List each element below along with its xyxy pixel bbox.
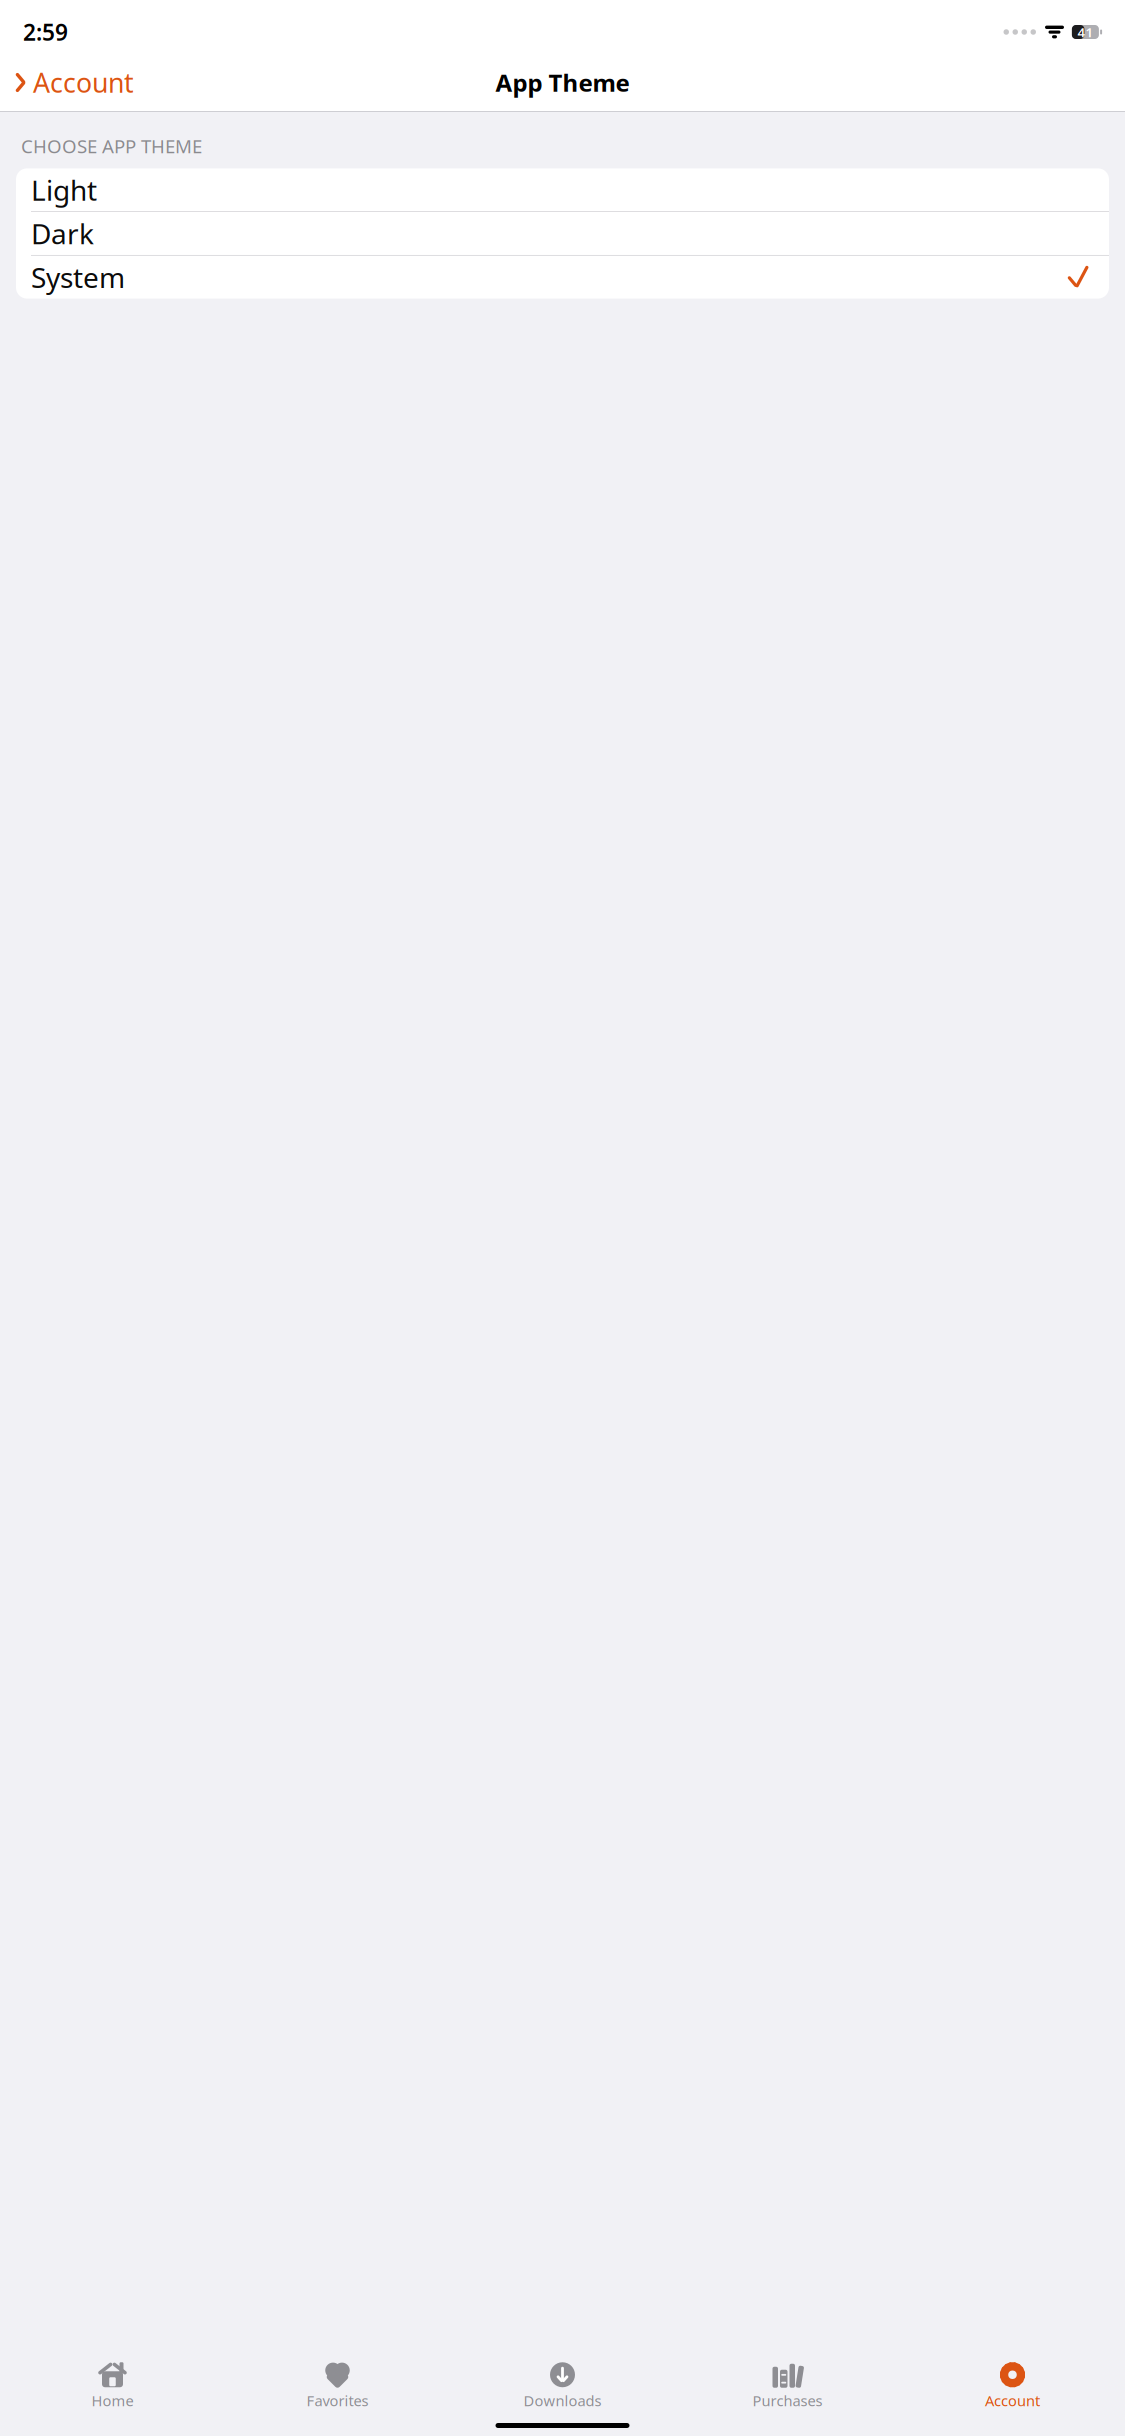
staticText: Home [91, 2391, 133, 2410]
staticText: Account [985, 2391, 1040, 2410]
staticText: Light [31, 171, 97, 208]
button[interactable]: Purchases [675, 2356, 900, 2412]
staticText: 2:59 [23, 17, 68, 47]
button[interactable]: Downloads [450, 2356, 675, 2412]
staticText: 41 [1077, 23, 1093, 41]
button[interactable]: Favorites [225, 2356, 450, 2412]
staticText: Favorites [306, 2391, 368, 2410]
staticText: System [31, 258, 125, 296]
staticText: Account [33, 65, 134, 100]
button[interactable]: Account [900, 2356, 1125, 2412]
button[interactable]: Dark [16, 212, 1109, 255]
staticText: Downloads [523, 2391, 601, 2410]
staticText: Dark [31, 215, 94, 252]
staticText: App Theme [495, 67, 629, 98]
button[interactable]: Account [0, 59, 134, 106]
button[interactable]: Home [0, 2356, 225, 2412]
button[interactable]: System [16, 256, 1109, 299]
staticText: CHOOSE APP THEME [21, 134, 202, 158]
staticText: Purchases [752, 2391, 822, 2410]
button[interactable]: Light [16, 168, 1109, 211]
